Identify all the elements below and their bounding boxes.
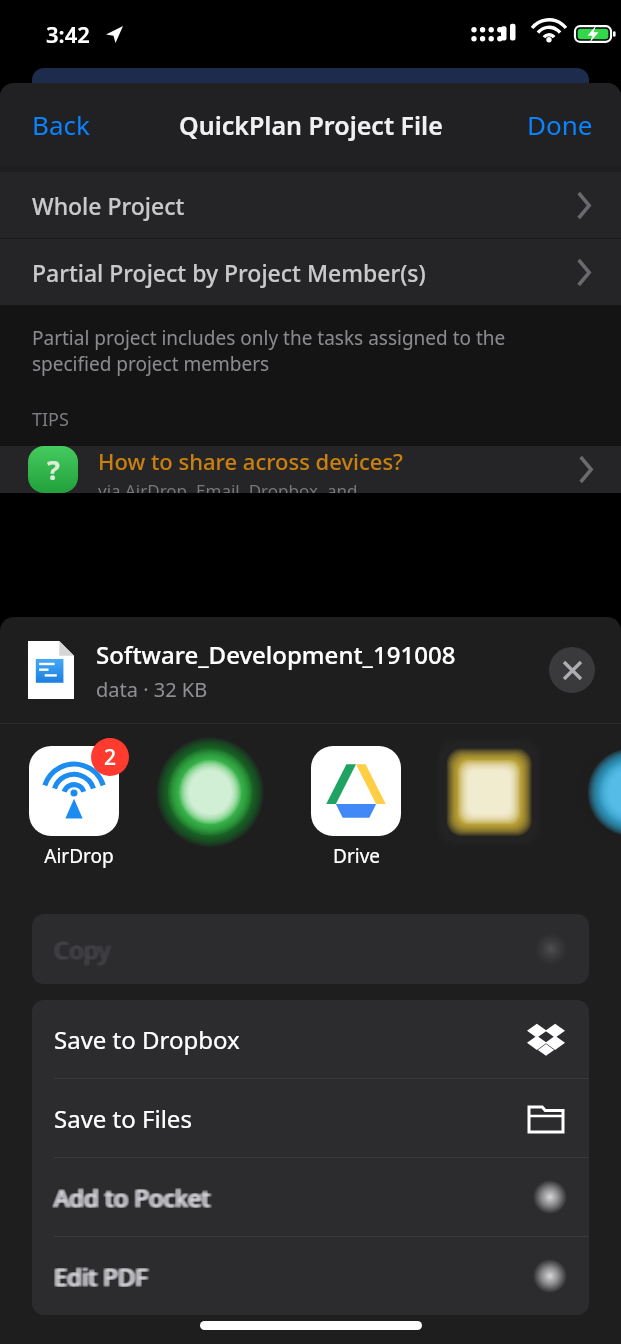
- staticText: Save to Dropbox: [54, 1023, 240, 1056]
- staticText: Edit PDF: [53, 1260, 147, 1293]
- staticText: Copy: [56, 934, 113, 967]
- staticText: How to share across devices?: [98, 446, 403, 476]
- staticText: Drive: [333, 843, 380, 869]
- staticText: Edit PDF: [54, 1259, 148, 1292]
- staticText: Copy: [52, 933, 109, 966]
- button[interactable]: [445, 746, 541, 866]
- staticText: 3:42: [46, 19, 90, 49]
- staticText: Done: [527, 107, 593, 142]
- staticText: via AirDrop, Email, Dropbox, and ...: [98, 479, 376, 493]
- staticText: Copy: [55, 933, 112, 966]
- staticText: Add to Pocket: [55, 1181, 212, 1214]
- staticText: Add to Pocket: [52, 1181, 209, 1214]
- staticText: Copy: [54, 933, 111, 966]
- staticText: Edit PDF: [53, 1259, 147, 1292]
- staticText: Copy: [54, 932, 111, 965]
- button[interactable]: [166, 746, 262, 866]
- button[interactable]: Whole Project: [0, 172, 621, 238]
- staticText: Add to Pocket: [53, 1181, 210, 1214]
- staticText: TIPS: [32, 407, 69, 432]
- staticText: Add to Pocket: [54, 1182, 211, 1215]
- staticText: Add to Pocket: [56, 1181, 213, 1214]
- button[interactable]: Save to Dropbox: [32, 1000, 589, 1078]
- staticText: Add to Pocket: [52, 1182, 209, 1215]
- button[interactable]: Save to Files: [32, 1079, 589, 1157]
- button[interactable]: ?: [0, 446, 621, 493]
- staticText: data · 32 KB: [96, 676, 208, 703]
- staticText: Add to Pocket: [55, 1182, 212, 1215]
- button[interactable]: Partial Project by Project Member(s): [0, 239, 621, 305]
- staticText: Edit PDF: [56, 1260, 150, 1293]
- staticText: Copy: [53, 932, 110, 965]
- staticText: Copy: [55, 932, 112, 965]
- staticText: Edit PDF: [54, 1260, 148, 1293]
- staticText: Partial Project by Project Member(s): [32, 257, 426, 288]
- button[interactable]: Back: [0, 91, 122, 158]
- staticText: Edit PDF: [55, 1259, 149, 1292]
- staticText: Edit PDF: [54, 1261, 148, 1294]
- staticText: Edit PDF: [55, 1260, 149, 1293]
- staticText: Add to Pocket: [54, 1181, 211, 1214]
- staticText: Copy: [56, 933, 113, 966]
- staticText: Copy: [53, 934, 110, 967]
- staticText: Add to Pocket: [53, 1180, 210, 1213]
- staticText: Edit PDF: [55, 1261, 149, 1294]
- button[interactable]: Close: [549, 647, 595, 693]
- staticText: 2: [104, 743, 117, 772]
- button[interactable]: Done: [499, 91, 621, 158]
- button[interactable]: 2: [26, 738, 132, 869]
- button[interactable]: Add to Pocket: [32, 1158, 589, 1236]
- button[interactable]: Edit PDF: [32, 1237, 589, 1315]
- staticText: Copy: [52, 934, 109, 967]
- staticText: Copy: [54, 934, 111, 967]
- staticText: ?: [47, 451, 60, 488]
- staticText: Edit PDF: [52, 1260, 146, 1293]
- staticText: Edit PDF: [56, 1261, 150, 1294]
- staticText: Copy: [55, 934, 112, 967]
- staticText: Add to Pocket: [52, 1180, 209, 1213]
- staticText: Add to Pocket: [55, 1180, 212, 1213]
- staticText: Whole Project: [32, 190, 185, 221]
- staticText: Copy: [56, 932, 113, 965]
- button[interactable]: Copy: [32, 914, 589, 984]
- staticText: Save to Files: [54, 1102, 192, 1135]
- staticText: Back: [32, 107, 90, 142]
- staticText: Edit PDF: [52, 1261, 146, 1294]
- staticText: Add to Pocket: [56, 1182, 213, 1215]
- staticText: Add to Pocket: [56, 1180, 213, 1213]
- staticText: QuickPlan Project File: [179, 108, 443, 142]
- staticText: AirDrop: [44, 843, 114, 869]
- staticText: Copy: [53, 933, 110, 966]
- staticText: Software_Development_191008: [96, 638, 456, 671]
- staticText: Copy: [52, 932, 109, 965]
- staticText: Edit PDF: [53, 1261, 147, 1294]
- button[interactable]: Drive: [306, 738, 406, 869]
- staticText: Edit PDF: [56, 1259, 150, 1292]
- button[interactable]: [586, 746, 621, 866]
- staticText: Partial project includes only the tasks …: [32, 325, 541, 377]
- staticText: Edit PDF: [52, 1259, 146, 1292]
- staticText: Add to Pocket: [54, 1180, 211, 1213]
- staticText: Add to Pocket: [53, 1182, 210, 1215]
